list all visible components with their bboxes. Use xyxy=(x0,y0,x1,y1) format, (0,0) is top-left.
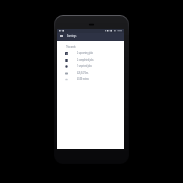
staticText: £26,547 Inv. xyxy=(77,71,89,75)
button[interactable]: £26,547 Inv. xyxy=(57,70,124,77)
staticText: 1 unpriced jobs xyxy=(77,64,92,68)
staticText: 2 completed jobs xyxy=(77,58,94,62)
button[interactable]: 2 upcoming jobs xyxy=(57,50,124,57)
button[interactable]: 2 completed jobs xyxy=(57,57,124,64)
staticText: £0.00 extras xyxy=(77,77,89,81)
button[interactable]: £0.00 extras xyxy=(57,76,124,83)
staticText: 2 upcoming jobs xyxy=(77,51,93,55)
button[interactable]: Open navigation menu xyxy=(58,33,65,41)
staticText: Earnings xyxy=(67,34,77,38)
button[interactable]: 1 unpriced jobs xyxy=(57,63,124,70)
staticText: This week xyxy=(66,45,76,49)
